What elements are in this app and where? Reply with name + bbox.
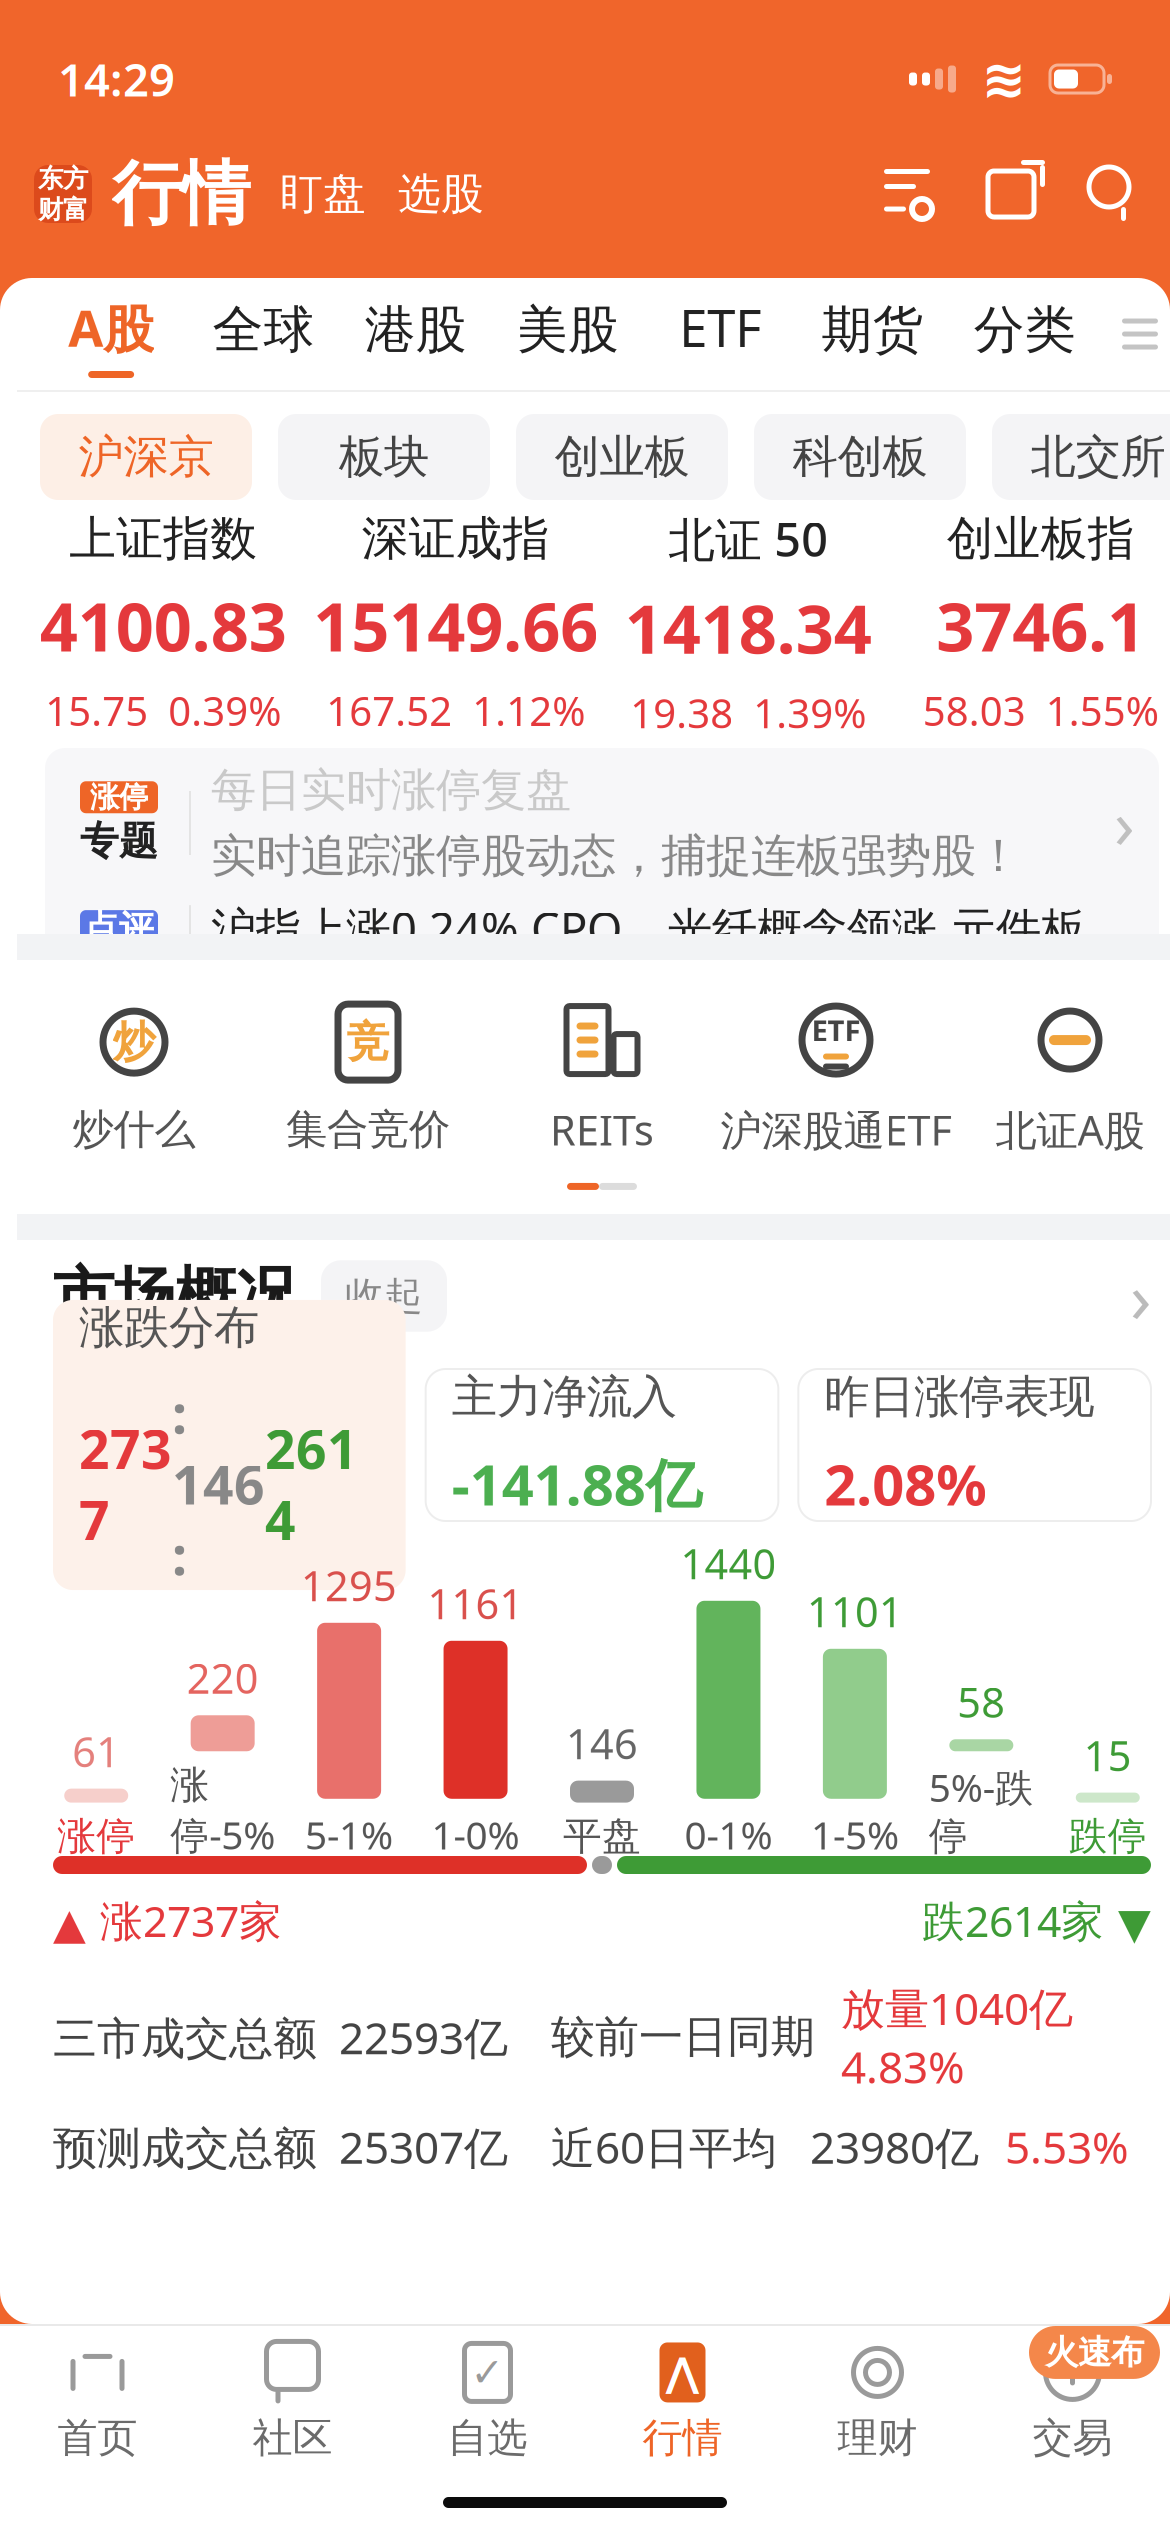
button[interactable]: 炒 <box>17 1000 251 1155</box>
staticText: 4100.83 <box>40 581 287 670</box>
staticText: 涨停 <box>57 1813 135 1860</box>
staticText: 5-1% <box>305 1809 393 1860</box>
staticText: 1.55% <box>1046 684 1159 737</box>
staticText: 跌停 <box>1069 1813 1147 1860</box>
button[interactable]: 昨日涨停表现 <box>798 1369 1151 1521</box>
staticText: ✓ <box>470 2350 504 2395</box>
staticText: 炒什么 <box>72 1104 195 1155</box>
button[interactable]: 科创板 <box>754 414 966 500</box>
staticText: ⋀ <box>665 2350 699 2395</box>
staticText: 主力净流入 <box>452 1369 677 1425</box>
button[interactable]: 东方财富 <box>34 165 92 223</box>
staticText: 2737 <box>79 1413 172 1555</box>
button[interactable]: 期货 <box>796 278 949 390</box>
staticText: 火速布 <box>1045 2332 1144 2373</box>
button[interactable]: 北证A股 <box>953 998 1170 1157</box>
button[interactable]: 涨跌分布 <box>53 1300 406 1590</box>
staticText: 涨跌分布 <box>79 1300 259 1356</box>
staticText: 沪深股通ETF <box>720 1102 951 1157</box>
button[interactable]: 选股 <box>398 168 484 220</box>
button[interactable]: 分享 <box>984 167 1038 221</box>
staticText: 沪指上涨0.24% CPO、光纤概念领涨 元件板 <box>211 898 1086 958</box>
button[interactable]: REITs <box>485 998 719 1157</box>
button[interactable]: 竞 <box>251 1000 485 1155</box>
staticText: REITs <box>550 1102 654 1157</box>
button[interactable]: 涨停 <box>45 748 1159 898</box>
button[interactable]: 创业板 <box>516 414 728 500</box>
staticText: 东方 <box>38 163 88 194</box>
staticText: 平盘 <box>563 1813 641 1860</box>
staticText: ≋ <box>981 49 1026 109</box>
button[interactable]: 深证成指 <box>309 510 602 737</box>
button[interactable]: 北证 50 <box>602 508 894 739</box>
staticText: 社区 <box>252 2413 332 2462</box>
button[interactable]: 分类 <box>949 278 1101 390</box>
staticText: 放量1040亿 4.83% <box>841 1979 1084 2096</box>
button[interactable]: 北交所 <box>992 414 1170 500</box>
staticText: :146: <box>172 1378 265 1590</box>
staticText: 美股 <box>517 299 619 361</box>
staticText: 每日实时涨停复盘 <box>211 762 571 818</box>
staticText: 3746.1 <box>936 581 1145 670</box>
staticText: 选股 <box>398 168 484 220</box>
button[interactable]: 美股 <box>492 278 644 390</box>
button[interactable]: 上证指数 <box>17 510 309 737</box>
staticText: 5.53% <box>1005 2117 1129 2176</box>
button[interactable]: 理财 <box>780 2329 975 2462</box>
staticText: 涨停 <box>90 779 148 815</box>
button[interactable]: 沪深京 <box>40 414 252 500</box>
staticText: 期货 <box>822 299 924 361</box>
staticText: 北交所 <box>1030 429 1165 485</box>
button[interactable]: 交易 <box>975 2329 1170 2462</box>
staticText: 2.08% <box>824 1447 987 1521</box>
staticText: 15 <box>1084 1728 1132 1783</box>
staticText: 预测成交总额 25307亿 <box>53 2117 508 2176</box>
button[interactable]: ✓ <box>390 2329 585 2462</box>
button[interactable]: 主力净流入 <box>426 1369 778 1521</box>
button[interactable]: 点评 <box>45 898 1159 968</box>
button[interactable]: 盯盘设置 <box>884 168 938 220</box>
staticText: ETF <box>679 294 761 361</box>
button[interactable]: 港股 <box>340 278 492 390</box>
staticText: 深证成指 <box>362 510 550 567</box>
staticText: 1101 <box>807 1584 903 1639</box>
button[interactable]: 全部分类 <box>1101 278 1170 390</box>
staticText: › <box>1114 779 1135 867</box>
button[interactable]: 行情 <box>112 151 250 237</box>
staticText: 交易 <box>1032 2413 1112 2462</box>
button[interactable]: 全球 <box>187 278 340 390</box>
button[interactable]: 首页 <box>0 2329 195 2462</box>
staticText: 14:29 <box>58 49 175 109</box>
staticText: 财富 <box>38 194 88 225</box>
staticText: 三市成交总额 22593亿 <box>53 2008 508 2066</box>
staticText: 1440 <box>680 1536 776 1591</box>
button[interactable]: 板块 <box>278 414 490 500</box>
staticText: 58.03 <box>923 684 1026 737</box>
staticText: 沪深京 <box>78 429 213 485</box>
button[interactable]: A股 <box>35 278 187 390</box>
staticText: 行情 <box>112 151 250 237</box>
staticText: 1-5% <box>811 1809 899 1860</box>
staticText: 行情 <box>642 2413 722 2462</box>
button[interactable]: ETF <box>644 278 796 390</box>
staticText: 理财 <box>837 2413 917 2462</box>
staticText: 港股 <box>365 299 467 361</box>
staticText: 1.12% <box>472 684 585 737</box>
button[interactable]: 创业板指 <box>894 510 1170 737</box>
staticText: -141.88亿 <box>452 1447 702 1521</box>
staticText: 分类 <box>974 299 1076 361</box>
staticText: 146 <box>566 1716 638 1771</box>
staticText: 近60日平均 23980亿 <box>551 2117 1005 2176</box>
button[interactable]: ETF <box>719 998 953 1157</box>
staticText: 市场概况 <box>53 1258 297 1334</box>
button[interactable]: 盯盘 <box>280 168 366 220</box>
button[interactable]: 收起 <box>321 1260 447 1332</box>
staticText: 点评 <box>84 907 154 949</box>
staticText: 板块 <box>339 429 429 485</box>
button[interactable]: 更多 <box>1130 1250 1151 1342</box>
staticText: 220 <box>187 1650 259 1705</box>
button[interactable]: ⋀ <box>585 2329 780 2462</box>
staticText: 自选 <box>447 2413 527 2462</box>
button[interactable]: 社区 <box>195 2329 390 2462</box>
button[interactable]: 搜索 <box>1082 167 1136 221</box>
